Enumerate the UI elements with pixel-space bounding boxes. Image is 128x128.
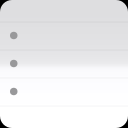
button[interactable] (0, 21, 128, 49)
button[interactable] (0, 49, 128, 77)
button[interactable] (0, 77, 128, 105)
button[interactable] (0, 0, 128, 21)
button[interactable] (0, 105, 128, 128)
